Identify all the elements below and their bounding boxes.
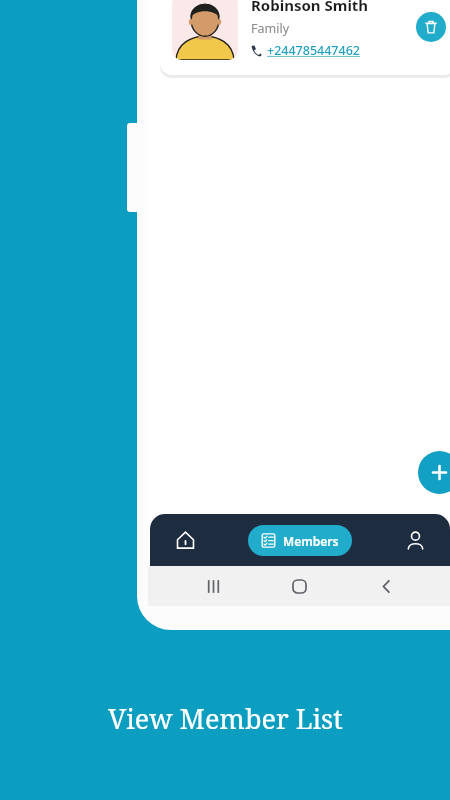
button[interactable]: Home [277, 566, 321, 606]
staticText: View Member List [108, 700, 343, 737]
staticText: +244785447462 [267, 42, 360, 59]
button[interactable]: Recents [191, 566, 235, 606]
button[interactable]: Add member [418, 451, 450, 494]
staticText: Robinson Smith [251, 0, 369, 15]
staticText: Family [251, 20, 290, 37]
button[interactable]: Members [248, 525, 352, 556]
button[interactable]: Delete member [416, 12, 446, 42]
button[interactable]: Home [162, 520, 208, 560]
button[interactable]: Robinson Smith [160, 0, 450, 75]
button[interactable]: Back [364, 566, 408, 606]
button[interactable]: Profile [392, 520, 438, 560]
staticText: Members [283, 533, 339, 549]
